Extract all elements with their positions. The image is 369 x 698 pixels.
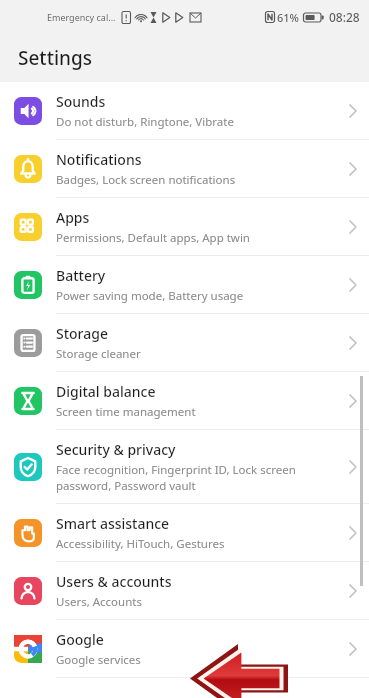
staticText: Users & accounts [56,572,172,591]
staticText: Battery [56,266,106,285]
staticText: password, Password vault [56,478,196,494]
staticText: Digital balance [56,382,156,401]
button[interactable]: Apps [0,198,369,256]
staticText: Security & privacy [56,440,176,459]
staticText: Settings [18,45,92,71]
staticText: Smart assistance [56,514,170,533]
button[interactable]: Google [0,620,369,678]
button[interactable]: Users & accounts [0,562,369,620]
staticText: Permissions, Default apps, App twin [56,230,250,246]
staticText: Users, Accounts [56,594,142,610]
staticText: Do not disturb, Ringtone, Vibrate [56,114,234,130]
button[interactable]: Security & privacy [0,430,369,504]
button[interactable]: Storage [0,314,369,372]
staticText: Storage cleaner [56,346,141,362]
staticText: Google [56,630,104,649]
button[interactable]: Smart assistance [0,504,369,562]
staticText: Notifications [56,150,142,169]
staticText: Emergency cal... [47,11,116,23]
staticText: Storage [56,324,108,343]
staticText: Apps [56,208,90,227]
staticText: Sounds [56,92,106,111]
staticText: Google services [56,652,141,668]
staticText: Face recognition, Fingerprint ID, Lock s… [56,462,296,478]
staticText: Accessibility, HiTouch, Gestures [56,536,225,552]
button[interactable]: Sounds [0,82,369,140]
button[interactable]: Notifications [0,140,369,198]
button[interactable]: Battery [0,256,369,314]
button[interactable]: Digital balance [0,372,369,430]
staticText: Badges, Lock screen notifications [56,172,236,188]
staticText: Power saving mode, Battery usage [56,288,244,304]
staticText: 08:28 [329,9,360,25]
staticText: Screen time management [56,404,196,420]
staticText: 61% [277,10,299,25]
